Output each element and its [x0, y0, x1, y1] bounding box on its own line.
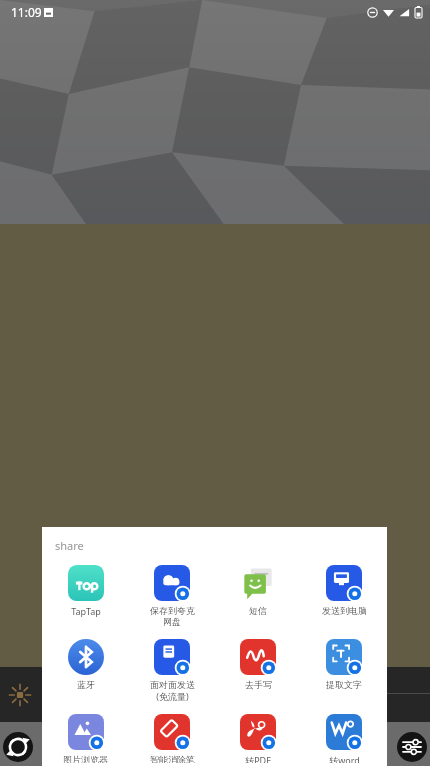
staticText: share — [55, 538, 84, 553]
staticText: 蓝牙 — [77, 679, 95, 690]
button[interactable]: 保存到夸克 — [129, 562, 215, 630]
button[interactable]: Rotate screen — [2, 731, 34, 763]
button[interactable]: 去手写 — [215, 636, 301, 693]
staticText: 发送到电脑 — [322, 605, 367, 616]
button[interactable]: Settings — [396, 731, 428, 763]
staticText: (免流量) — [156, 690, 189, 702]
button[interactable]: TapTap — [42, 562, 129, 620]
staticText: 去手写 — [245, 679, 272, 690]
button[interactable]: 转PDF — [215, 711, 301, 766]
staticText: 智能消除笔 — [150, 754, 195, 763]
button[interactable]: 发送到电脑 — [301, 562, 387, 619]
staticText: 面对面发送 — [150, 679, 195, 690]
button[interactable]: 提取文字 — [301, 636, 387, 693]
staticText: 保存到夸克 — [150, 605, 195, 616]
button[interactable]: 蓝牙 — [42, 636, 129, 693]
button[interactable]: 短信 — [215, 562, 301, 619]
staticText: 图片浏览器 — [63, 754, 108, 763]
staticText: 提取文字 — [326, 679, 362, 690]
staticText: 短信 — [249, 605, 267, 616]
button[interactable]: 转word — [301, 711, 387, 766]
staticText: 转word — [329, 754, 360, 763]
button[interactable]: 图片浏览器 — [42, 711, 129, 766]
staticText: 网盘 — [163, 616, 181, 627]
button[interactable]: 智能消除笔 — [129, 711, 215, 766]
staticText: TapTap — [71, 605, 101, 617]
button[interactable]: 面对面发送 — [129, 636, 215, 705]
button[interactable]: Brightness — [4, 679, 36, 711]
staticText: 11:09 — [11, 4, 42, 20]
staticText: 转PDF — [245, 754, 271, 763]
